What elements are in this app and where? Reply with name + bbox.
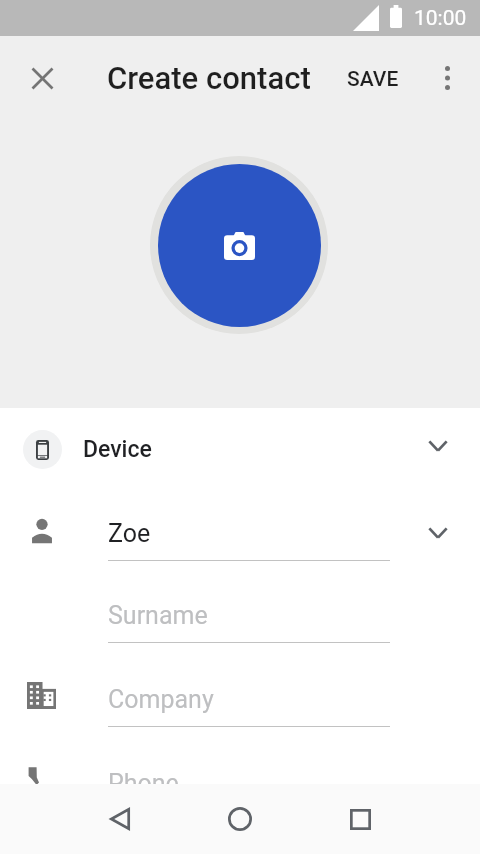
button[interactable]: Recent apps: [336, 795, 384, 843]
button[interactable]: Add photo: [150, 156, 328, 334]
button[interactable]: Expand name fields: [418, 513, 458, 553]
staticText: Device: [83, 436, 152, 463]
button[interactable]: Zoe: [108, 512, 390, 561]
button[interactable]: Device: [0, 408, 480, 492]
button[interactable]: Close: [18, 54, 66, 102]
staticText: 10:00: [414, 6, 467, 31]
button[interactable]: Home: [216, 795, 264, 843]
staticText: Zoe: [108, 519, 151, 548]
staticText: Create contact: [107, 60, 311, 96]
staticText: Surname: [108, 601, 208, 630]
button[interactable]: SAVE: [335, 61, 411, 98]
staticText: Company: [108, 685, 214, 714]
staticText: Phone: [108, 769, 179, 798]
button[interactable]: Company: [108, 678, 390, 727]
button[interactable]: More options: [424, 55, 470, 101]
button[interactable]: Phone: [108, 762, 390, 811]
button[interactable]: Back: [96, 795, 144, 843]
staticText: SAVE: [347, 67, 399, 92]
button[interactable]: Surname: [108, 594, 390, 643]
